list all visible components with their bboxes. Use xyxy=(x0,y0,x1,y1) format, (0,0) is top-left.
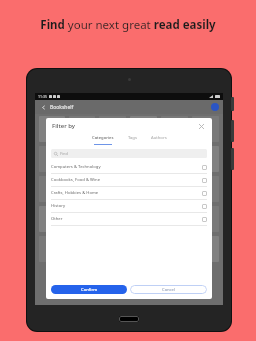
button[interactable]: Find xyxy=(51,149,207,158)
staticText: Cookbooks, Food & Wine xyxy=(51,177,101,183)
staticText: Categories xyxy=(92,135,114,141)
button[interactable]: Close xyxy=(197,122,206,131)
button[interactable]: Categories xyxy=(91,134,115,146)
button[interactable]: Authors xyxy=(150,134,168,145)
staticText: Filter by xyxy=(52,122,76,130)
staticText: Confirm xyxy=(81,287,98,293)
staticText: Other xyxy=(51,216,63,222)
staticText: Bookshelf xyxy=(50,104,74,111)
staticText: Authors xyxy=(151,135,167,141)
staticText: Tags xyxy=(128,135,137,141)
staticText: 11:35 xyxy=(38,94,47,99)
button[interactable]: Cookbooks, Food & Wine xyxy=(46,174,212,186)
button[interactable]: Tags xyxy=(127,134,138,145)
button[interactable]: Cancel xyxy=(130,285,207,294)
staticText: Find your next great read easily xyxy=(40,17,216,33)
staticText: Find xyxy=(60,151,69,156)
button[interactable]: Other xyxy=(46,213,212,225)
staticText: History xyxy=(51,203,66,209)
button[interactable]: Crafts, Hobbies & Home xyxy=(46,187,212,199)
button[interactable]: History xyxy=(46,200,212,212)
button[interactable]: Back xyxy=(39,103,47,111)
button[interactable]: Confirm xyxy=(51,285,127,294)
button[interactable]: Account xyxy=(211,103,219,111)
button[interactable]: Computers & Technology xyxy=(46,161,212,173)
staticText: Cancel xyxy=(162,287,176,293)
staticText: Crafts, Hobbies & Home xyxy=(51,190,99,196)
staticText: Computers & Technology xyxy=(51,164,101,170)
